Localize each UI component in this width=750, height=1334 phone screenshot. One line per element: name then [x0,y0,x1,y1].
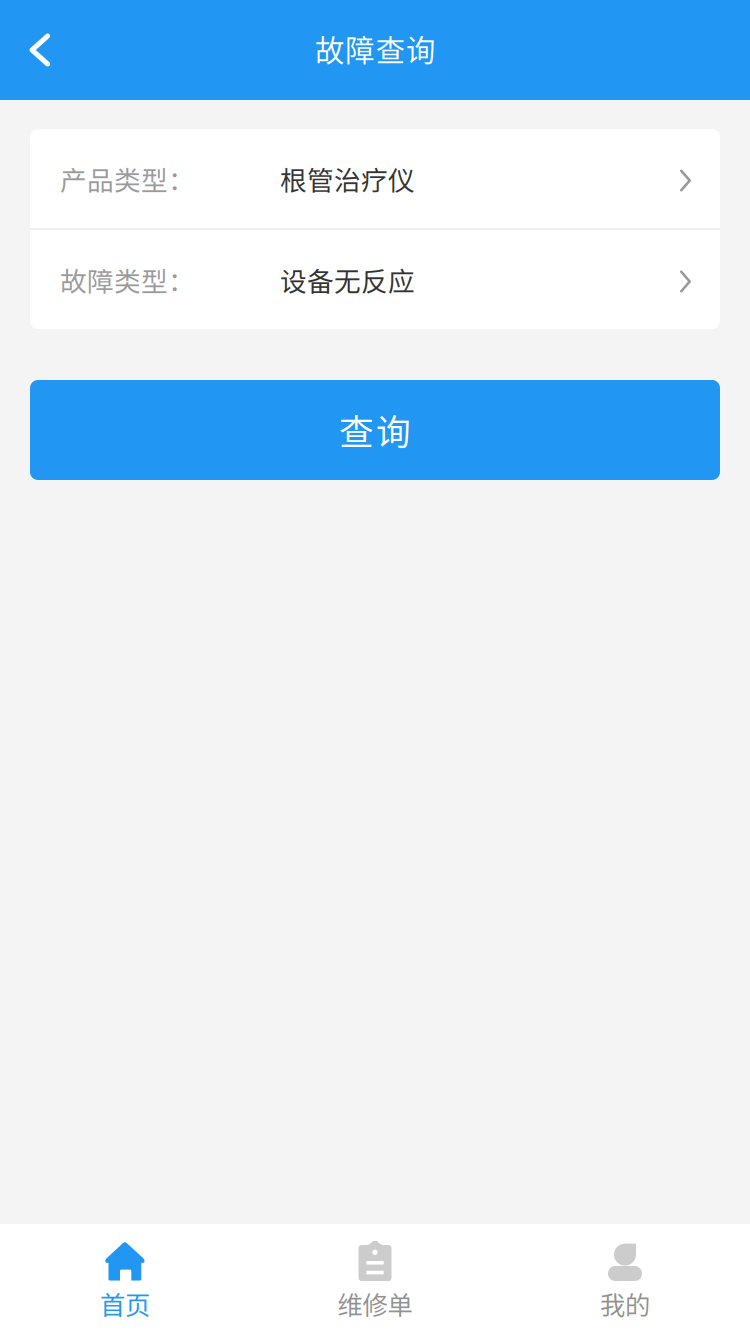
button[interactable]: 产品类型： [30,129,720,228]
staticText: 首页 [100,1285,150,1322]
staticText: 故障类型： [60,260,195,299]
staticText: 故障查询 [315,27,435,70]
staticText: 维修单 [337,1285,412,1322]
button[interactable]: 首页 [0,1224,250,1334]
button[interactable]: 维修单 [250,1224,500,1334]
button[interactable]: Back [0,21,73,79]
staticText: 产品类型： [60,159,195,198]
staticText: 我的 [600,1285,650,1322]
button[interactable]: 我的 [500,1224,750,1334]
staticText: 根管治疗仪 [280,159,415,198]
button[interactable]: 故障类型： [30,230,720,329]
staticText: 设备无反应 [280,260,415,299]
button[interactable]: 查询 [30,380,720,480]
staticText: 查询 [339,405,411,455]
